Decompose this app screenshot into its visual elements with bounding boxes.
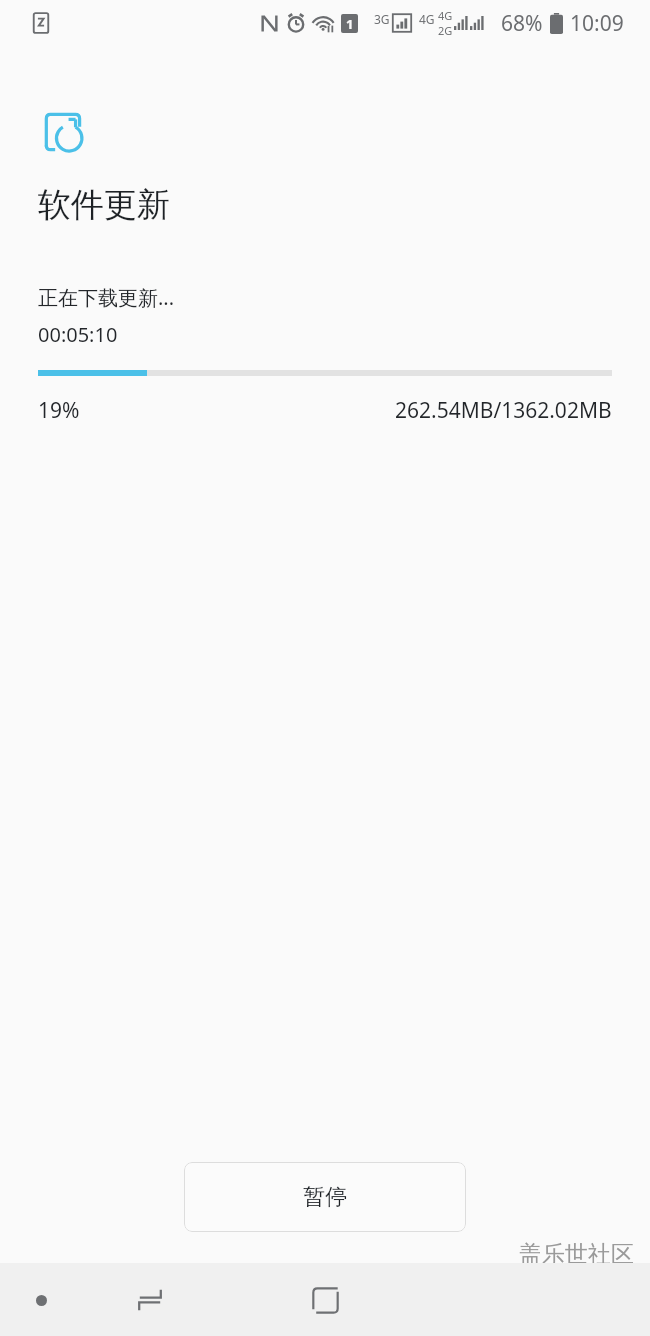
staticText: 00:05:10 [38,321,118,348]
staticText: 暂停 [303,1183,347,1211]
staticText: 10:09 [570,9,624,38]
button[interactable]: Indicator [26,1285,56,1315]
staticText: 正在下载更新... [38,284,175,311]
staticText: 软件更新 [38,184,170,226]
staticText: 1 [346,15,354,33]
staticText: 4G [419,11,435,27]
button[interactable]: Recents [118,1268,182,1332]
button[interactable]: Home [293,1268,357,1332]
staticText: 3G [374,11,390,27]
staticText: 2G [438,23,453,38]
button[interactable]: 暂停 [184,1162,466,1232]
staticText: 19% [38,396,80,425]
staticText: 盖乐世社区 [519,1240,634,1269]
staticText: 262.54MB/1362.02MB [395,396,612,425]
staticText: 68% [501,9,543,38]
staticText: 4G [438,8,453,23]
